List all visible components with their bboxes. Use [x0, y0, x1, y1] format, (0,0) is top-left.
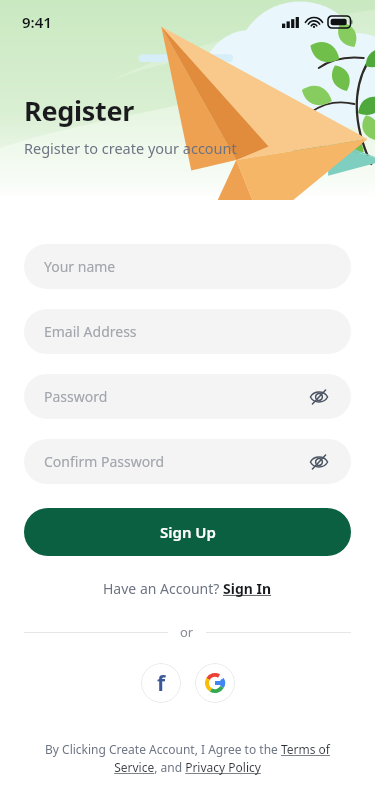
- staticText: Have an Account?: [103, 579, 223, 598]
- button[interactable]: By Clicking Create Account, I Agree to t…: [34, 741, 341, 776]
- staticText: Sign Up: [160, 522, 216, 542]
- button[interactable]: Sign up with Facebook: [141, 663, 181, 703]
- button[interactable]: Show password: [307, 385, 331, 409]
- button[interactable]: Sign In: [223, 579, 272, 598]
- staticText: Register: [24, 92, 135, 129]
- staticText: Email Address: [44, 322, 331, 341]
- button[interactable]: Your name: [24, 244, 351, 289]
- staticText: Your name: [44, 257, 331, 276]
- staticText: Register to create your account: [24, 138, 237, 158]
- button[interactable]: Show password: [307, 450, 331, 474]
- button[interactable]: Email Address: [24, 309, 351, 354]
- staticText: Confirm Password: [44, 452, 307, 471]
- staticText: Password: [44, 387, 307, 406]
- button[interactable]: Sign up with Google: [195, 663, 235, 703]
- button[interactable]: Confirm Password: [24, 439, 351, 484]
- staticText: By Clicking Create Account, I Agree to t…: [34, 741, 341, 776]
- staticText: or: [180, 623, 194, 641]
- button[interactable]: Sign Up: [24, 508, 351, 556]
- staticText: Sign In: [223, 579, 272, 598]
- staticText: 9:41: [22, 12, 52, 32]
- staticText: f: [157, 669, 166, 698]
- button[interactable]: Password: [24, 374, 351, 419]
